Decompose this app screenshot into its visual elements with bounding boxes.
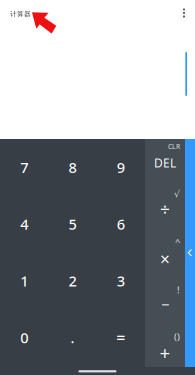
button[interactable]: 9	[97, 139, 145, 196]
button[interactable]: 5	[48, 196, 97, 252]
staticText: 7	[20, 158, 28, 177]
staticText: ×	[160, 247, 170, 270]
staticText: ()	[174, 330, 180, 343]
button[interactable]: ÷	[145, 187, 185, 234]
button[interactable]: 1	[0, 252, 48, 309]
staticText: −	[161, 295, 169, 314]
button[interactable]: 3	[97, 252, 145, 309]
button[interactable]: 2	[48, 252, 97, 309]
staticText: CLR	[168, 142, 180, 151]
button[interactable]: 7	[0, 139, 48, 196]
staticText: .	[70, 328, 74, 347]
button[interactable]: +	[145, 329, 185, 375]
staticText: ÷	[160, 197, 170, 220]
staticText: ^	[175, 235, 180, 248]
staticText: 9	[117, 158, 125, 177]
staticText: 2	[68, 271, 76, 290]
button[interactable]: −	[145, 282, 185, 329]
button[interactable]: 4	[0, 196, 48, 252]
staticText: DEL	[154, 155, 176, 171]
staticText: √	[174, 189, 180, 199]
staticText: 8	[68, 158, 76, 177]
staticText: !	[177, 284, 180, 296]
staticText: 4	[20, 214, 28, 234]
button[interactable]: .	[48, 309, 97, 366]
staticText: 计算器	[10, 10, 31, 18]
button[interactable]: 0	[0, 309, 48, 366]
button[interactable]: 6	[97, 196, 145, 252]
staticText: =	[116, 327, 125, 348]
staticText: 5	[68, 214, 76, 234]
staticText: 3	[117, 271, 125, 290]
button[interactable]: Collapse panel	[185, 139, 195, 367]
button[interactable]: 8	[48, 139, 97, 196]
button[interactable]: More options	[173, 2, 195, 28]
staticText: 6	[117, 214, 125, 234]
button[interactable]: ×	[145, 234, 185, 282]
button[interactable]: =	[97, 309, 145, 366]
staticText: 1	[20, 271, 28, 290]
button[interactable]: DEL	[145, 139, 185, 187]
staticText: +	[159, 340, 170, 365]
staticText: 0	[20, 328, 28, 347]
